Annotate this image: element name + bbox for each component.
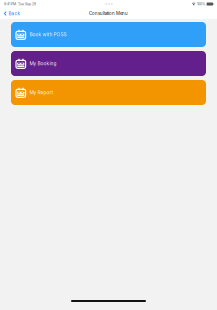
staticText: Consultation Menu <box>89 11 128 16</box>
staticText: Back <box>8 11 19 16</box>
staticText: My Report <box>30 90 54 95</box>
button[interactable]: Back <box>0 8 22 19</box>
staticText: Book with POSS <box>30 32 67 37</box>
button[interactable]: My Booking <box>11 51 206 76</box>
staticText: Tue Sep 29 <box>16 2 36 6</box>
staticText: 100% <box>197 2 205 6</box>
staticText: My Booking <box>30 61 57 66</box>
staticText: 9:41 PM <box>4 2 16 6</box>
button[interactable]: Book with POSS <box>11 22 206 47</box>
button[interactable]: My Report <box>11 80 206 105</box>
